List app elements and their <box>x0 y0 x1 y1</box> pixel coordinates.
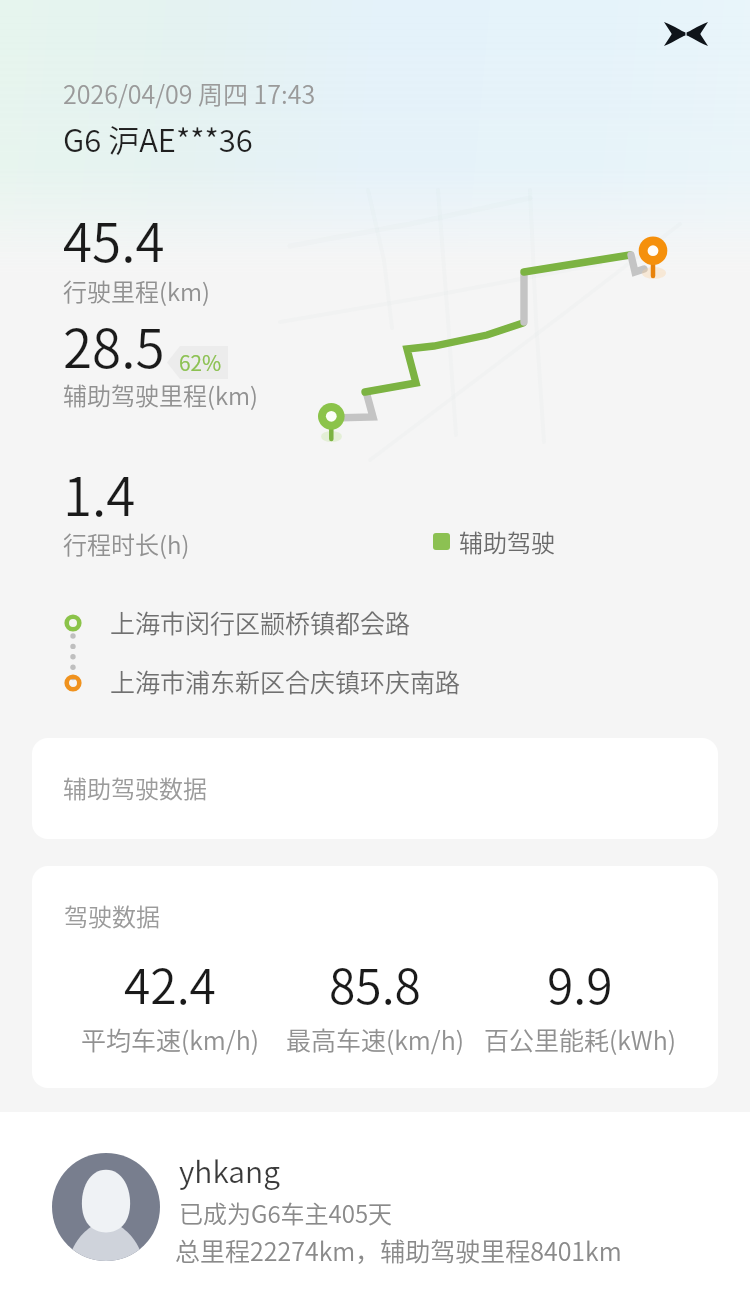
staticText: 28.5 <box>63 307 165 384</box>
staticText: 百公里能耗(kWh) <box>484 1021 676 1057</box>
staticText: 上海市闵行区颛桥镇都会路 <box>110 604 411 640</box>
staticText: 最高车速(km/h) <box>286 1021 464 1057</box>
button[interactable]: 辅助驾驶数据 <box>32 738 718 839</box>
staticText: 驾驶数据 <box>64 898 160 933</box>
staticText: 辅助驾驶里程(km) <box>63 377 258 412</box>
staticText: 辅助驾驶数据 <box>63 770 207 805</box>
button[interactable]: 驾驶数据 <box>32 866 718 1088</box>
staticText: 上海市浦东新区合庆镇环庆南路 <box>110 663 461 699</box>
staticText: 行驶里程(km) <box>63 273 210 308</box>
staticText: 2026/04/09 周四 17:43 <box>63 75 316 111</box>
staticText: 总里程22274km，辅助驾驶里程8401km <box>175 1232 622 1268</box>
button[interactable]: XPeng logo <box>654 12 718 56</box>
staticText: 已成为G6车主405天 <box>179 1195 393 1230</box>
staticText: 9.9 <box>547 948 613 1018</box>
staticText: 辅助驾驶 <box>459 524 555 559</box>
staticText: yhkang <box>179 1148 280 1191</box>
staticText: 42.4 <box>124 948 216 1018</box>
staticText: 62% <box>179 347 222 377</box>
staticText: 行程时长(h) <box>63 526 190 561</box>
staticText: 平均车速(km/h) <box>81 1021 259 1057</box>
staticText: 1.4 <box>63 455 136 532</box>
button[interactable]: yhkang <box>0 1112 750 1302</box>
staticText: 45.4 <box>63 201 165 278</box>
staticText: G6 沪AE***36 <box>63 116 253 161</box>
staticText: 85.8 <box>329 948 421 1018</box>
